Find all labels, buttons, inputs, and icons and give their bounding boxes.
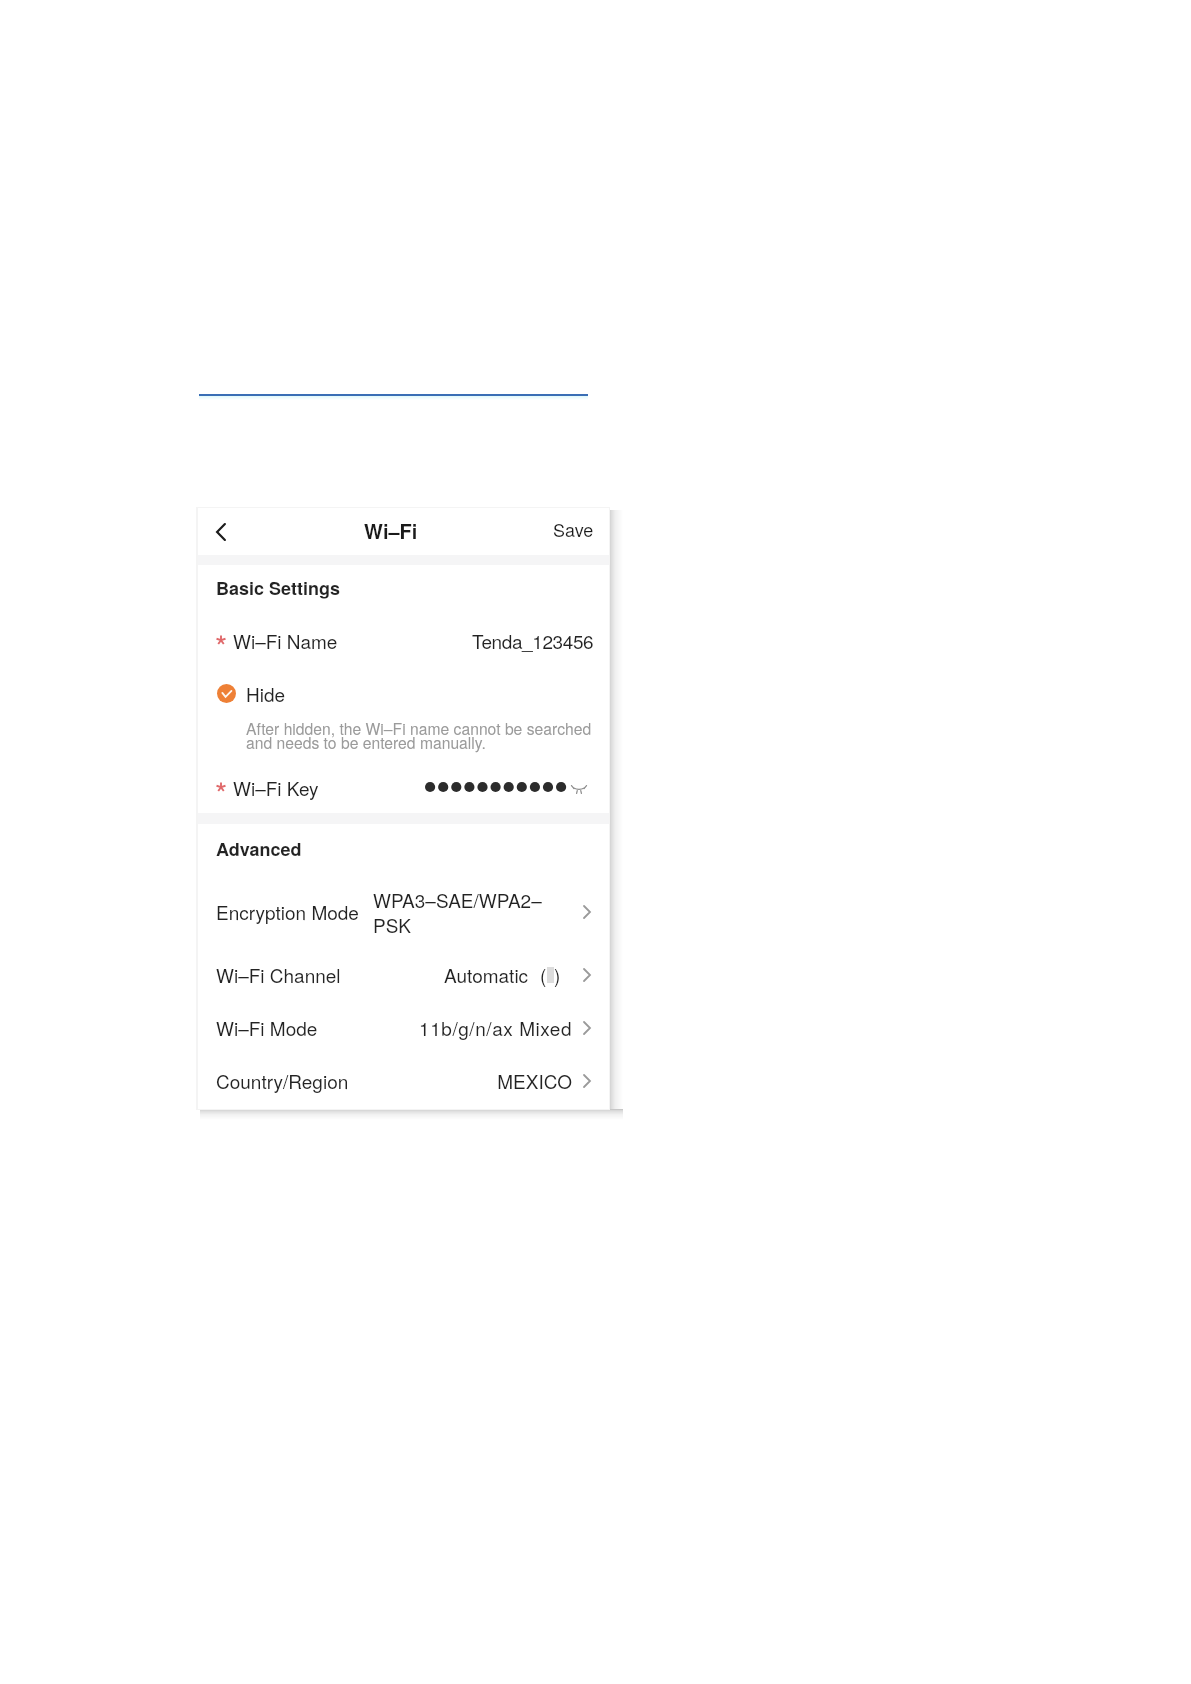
button[interactable]: Wi–Fi Key (198, 767, 609, 807)
staticText: Wi–Fi Mode (216, 1014, 318, 1041)
button[interactable]: Country/Region (198, 1060, 609, 1100)
staticText: 11b/g/n/ax Mixed (372, 1014, 572, 1041)
button[interactable]: Hide (198, 677, 609, 709)
button[interactable]: Wi–Fi Mode (198, 1007, 609, 1047)
staticText: Basic Settings (216, 575, 340, 601)
staticText: Encryption Mode (216, 898, 359, 925)
button[interactable]: Show password (569, 779, 589, 799)
staticText: After hidden, the Wi–Fi name cannot be s… (246, 717, 595, 754)
staticText: Country/Region (216, 1067, 349, 1094)
staticText: Automatic (444, 961, 529, 988)
staticText: WPA3–SAE/WPA2–PSK (373, 886, 545, 938)
staticText: ) (554, 961, 561, 988)
staticText: ( (540, 961, 547, 988)
button[interactable]: Wi–Fi Name (198, 621, 609, 659)
staticText: Advanced (216, 836, 302, 862)
button[interactable]: Encryption Mode (198, 882, 609, 940)
staticText: Save (553, 516, 594, 542)
staticText: Wi–Fi Name (233, 627, 338, 654)
button[interactable]: Save (553, 516, 594, 542)
staticText: MEXICO (372, 1067, 572, 1094)
staticText: Tenda_123456 (472, 627, 594, 654)
staticText: Wi–Fi (364, 516, 418, 545)
staticText: Wi–Fi Channel (216, 961, 341, 988)
button[interactable]: Back (204, 515, 238, 549)
button[interactable]: Wi–Fi Channel (198, 954, 609, 994)
staticText: Wi–Fi Key (233, 774, 319, 801)
staticText: Hide (246, 680, 286, 707)
